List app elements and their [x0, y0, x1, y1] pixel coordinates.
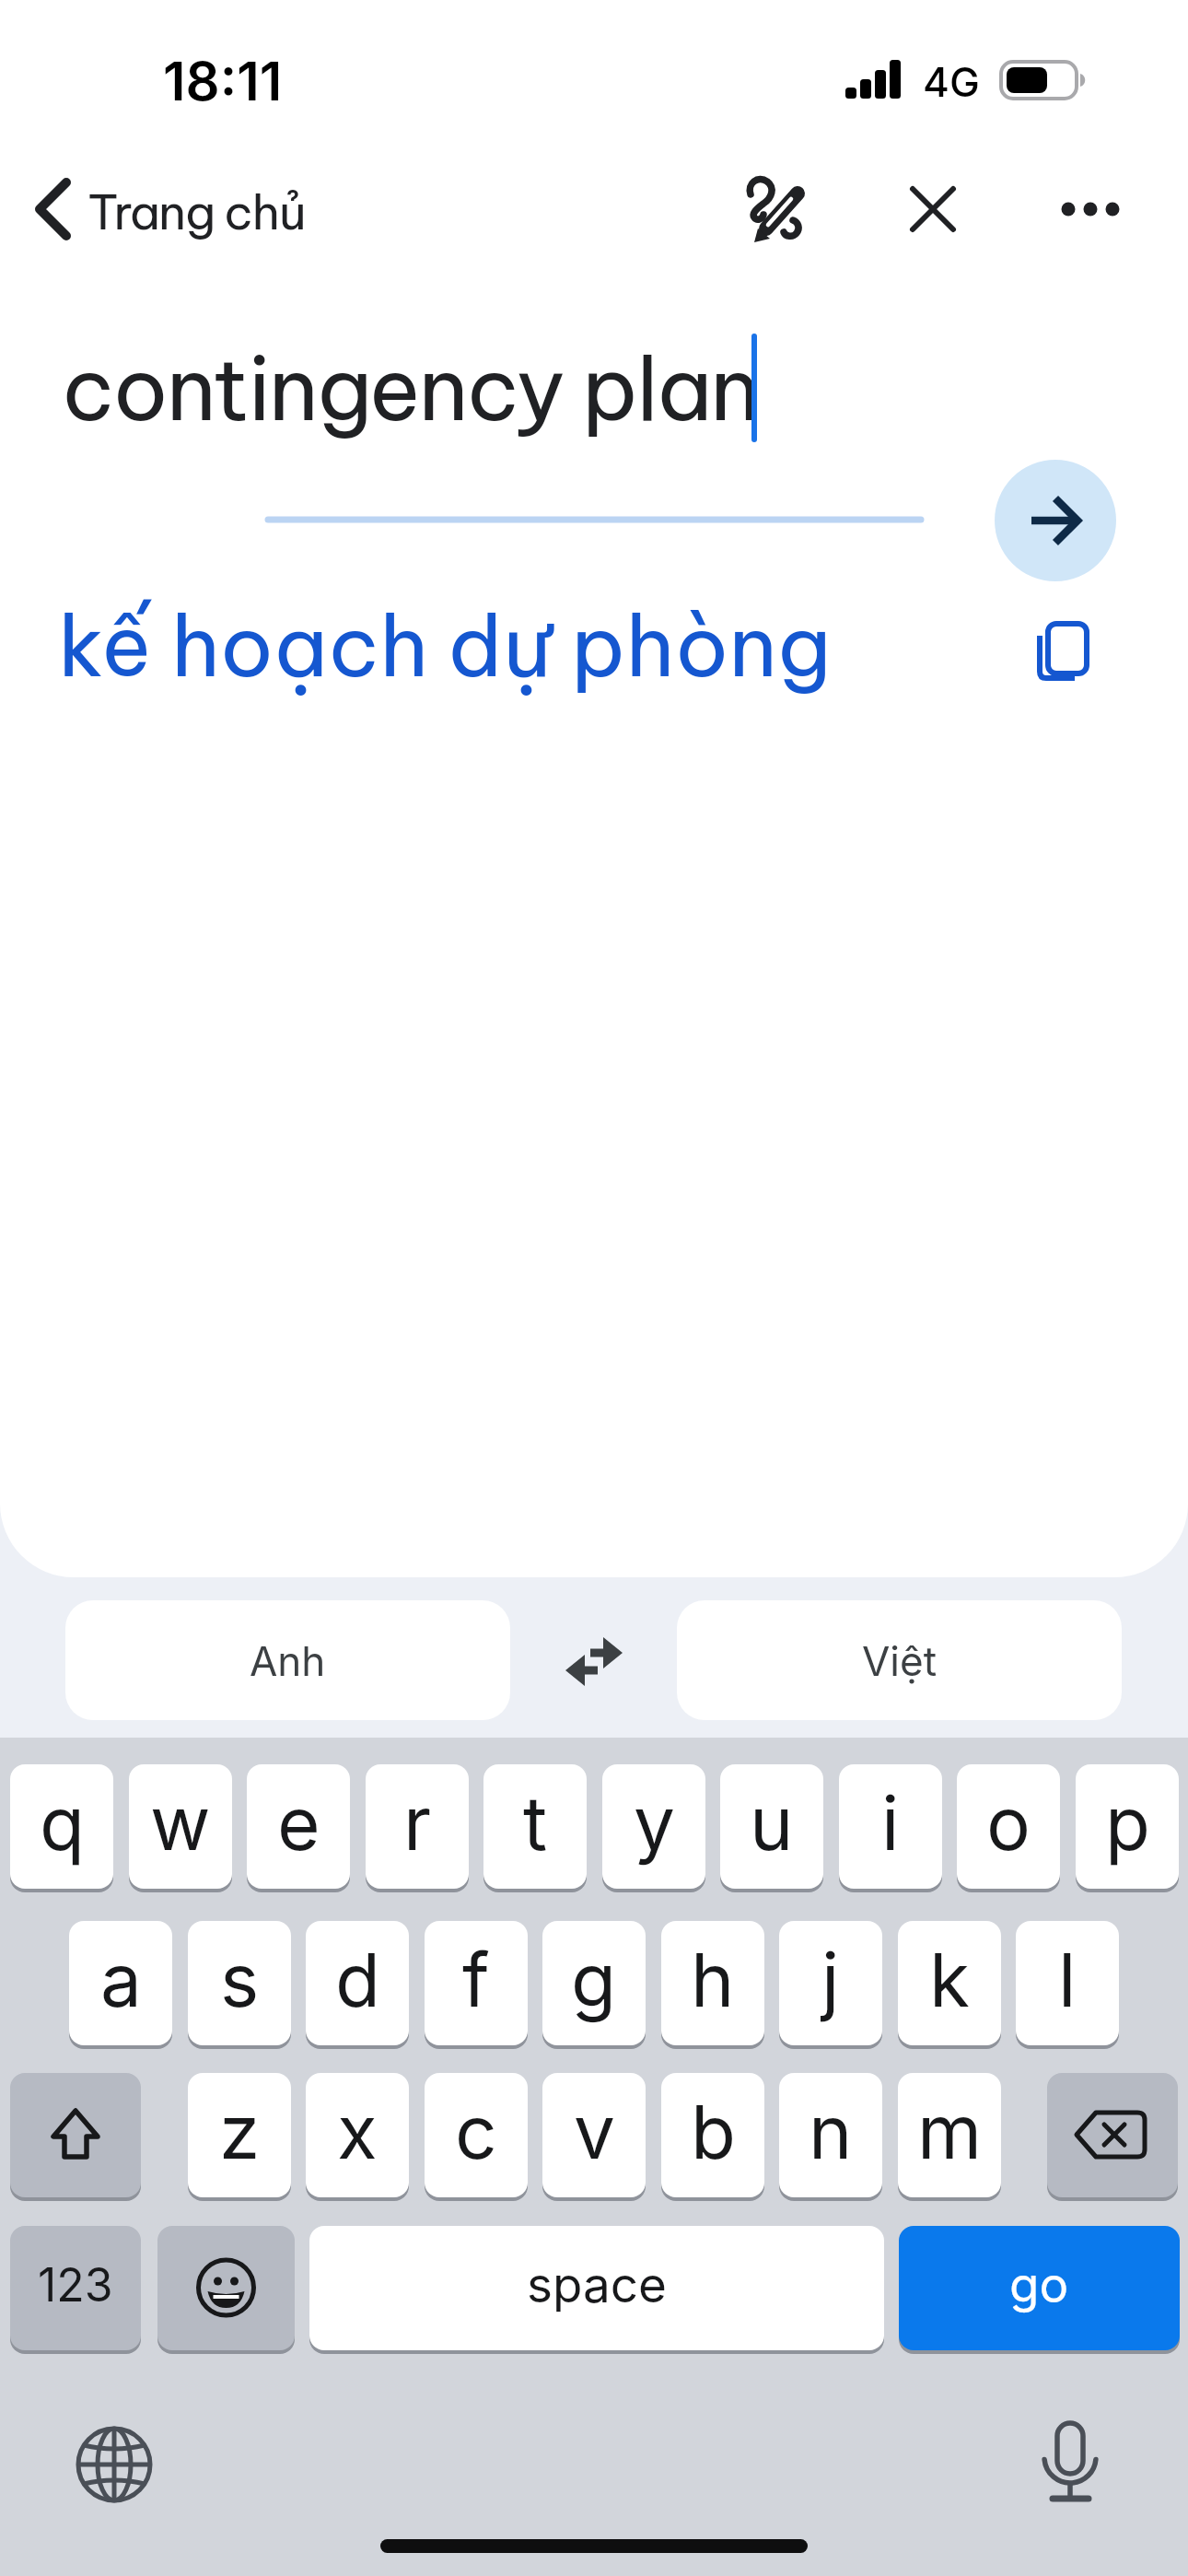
button[interactable]: m — [898, 2073, 1001, 2197]
button[interactable]: Việt — [677, 1600, 1122, 1720]
staticText: v — [574, 2087, 615, 2176]
button[interactable]: z — [188, 2073, 291, 2197]
button[interactable]: k — [898, 1921, 1001, 2045]
staticText: e — [277, 1778, 320, 1868]
button[interactable] — [891, 168, 974, 251]
staticText: q — [40, 1778, 85, 1868]
button[interactable]: o — [957, 1764, 1060, 1889]
button[interactable] — [1027, 2409, 1119, 2511]
button[interactable]: r — [366, 1764, 469, 1889]
button[interactable]: space — [309, 2226, 884, 2350]
button[interactable] — [732, 163, 824, 255]
staticText: l — [1058, 1935, 1077, 2024]
staticText: d — [335, 1935, 380, 2024]
button[interactable]: c — [425, 2073, 528, 2197]
staticText: m — [917, 2087, 983, 2176]
button[interactable] — [10, 2073, 141, 2197]
button[interactable] — [67, 2418, 159, 2510]
button[interactable]: g — [542, 1921, 646, 2045]
button[interactable]: q — [10, 1764, 113, 1889]
button[interactable]: p — [1076, 1764, 1179, 1889]
staticText: i — [881, 1778, 900, 1868]
staticText: Trang chủ — [87, 181, 306, 242]
button[interactable]: y — [602, 1764, 705, 1889]
staticText: f — [462, 1935, 490, 2024]
button[interactable]: h — [661, 1921, 764, 2045]
staticText: w — [150, 1778, 211, 1868]
button[interactable]: go — [899, 2226, 1180, 2350]
staticText: s — [220, 1935, 260, 2024]
staticText: r — [403, 1778, 432, 1868]
button[interactable]: u — [720, 1764, 823, 1889]
staticText: 18:11 — [163, 49, 283, 113]
button[interactable]: j — [779, 1921, 882, 2045]
staticText: k — [929, 1935, 970, 2024]
button[interactable]: n — [779, 2073, 882, 2197]
staticText: n — [809, 2087, 853, 2176]
button[interactable] — [553, 1619, 635, 1702]
button[interactable] — [1019, 608, 1101, 691]
button[interactable] — [995, 460, 1116, 581]
button[interactable]: x — [306, 2073, 409, 2197]
staticText: z — [219, 2087, 261, 2176]
button[interactable] — [157, 2226, 295, 2350]
button[interactable]: d — [306, 1921, 409, 2045]
staticText: u — [750, 1778, 794, 1868]
staticText: a — [100, 1935, 142, 2024]
button[interactable]: Anh — [65, 1600, 510, 1720]
staticText: 123 — [38, 2257, 113, 2313]
button[interactable]: s — [188, 1921, 291, 2045]
button[interactable]: e — [247, 1764, 350, 1889]
button[interactable]: w — [129, 1764, 232, 1889]
staticText: kế hoạch dự phòng — [58, 592, 832, 698]
button[interactable]: b — [661, 2073, 764, 2197]
staticText: y — [634, 1778, 675, 1868]
staticText: x — [337, 2087, 378, 2176]
staticText: h — [691, 1935, 735, 2024]
button[interactable]: f — [425, 1921, 528, 2045]
staticText: space — [527, 2255, 667, 2314]
staticText: Anh — [250, 1636, 326, 1685]
staticText: b — [691, 2087, 736, 2176]
button[interactable]: i — [839, 1764, 942, 1889]
button[interactable]: a — [69, 1921, 172, 2045]
staticText: t — [523, 1778, 548, 1868]
staticText: p — [1105, 1778, 1150, 1868]
staticText: Việt — [862, 1636, 938, 1685]
staticText: g — [571, 1935, 617, 2024]
button[interactable]: l — [1016, 1921, 1119, 2045]
button[interactable]: t — [483, 1764, 587, 1889]
button[interactable] — [1047, 2073, 1178, 2197]
button[interactable]: v — [542, 2073, 646, 2197]
staticText: o — [986, 1778, 1031, 1868]
staticText: go — [1009, 2255, 1069, 2314]
staticText: j — [821, 1935, 840, 2024]
staticText: 4G — [923, 57, 980, 106]
staticText: contingency plan — [62, 334, 759, 443]
staticText: c — [455, 2087, 497, 2176]
button[interactable] — [1049, 168, 1132, 251]
button[interactable]: 123 — [10, 2226, 141, 2350]
button[interactable] — [18, 166, 313, 253]
